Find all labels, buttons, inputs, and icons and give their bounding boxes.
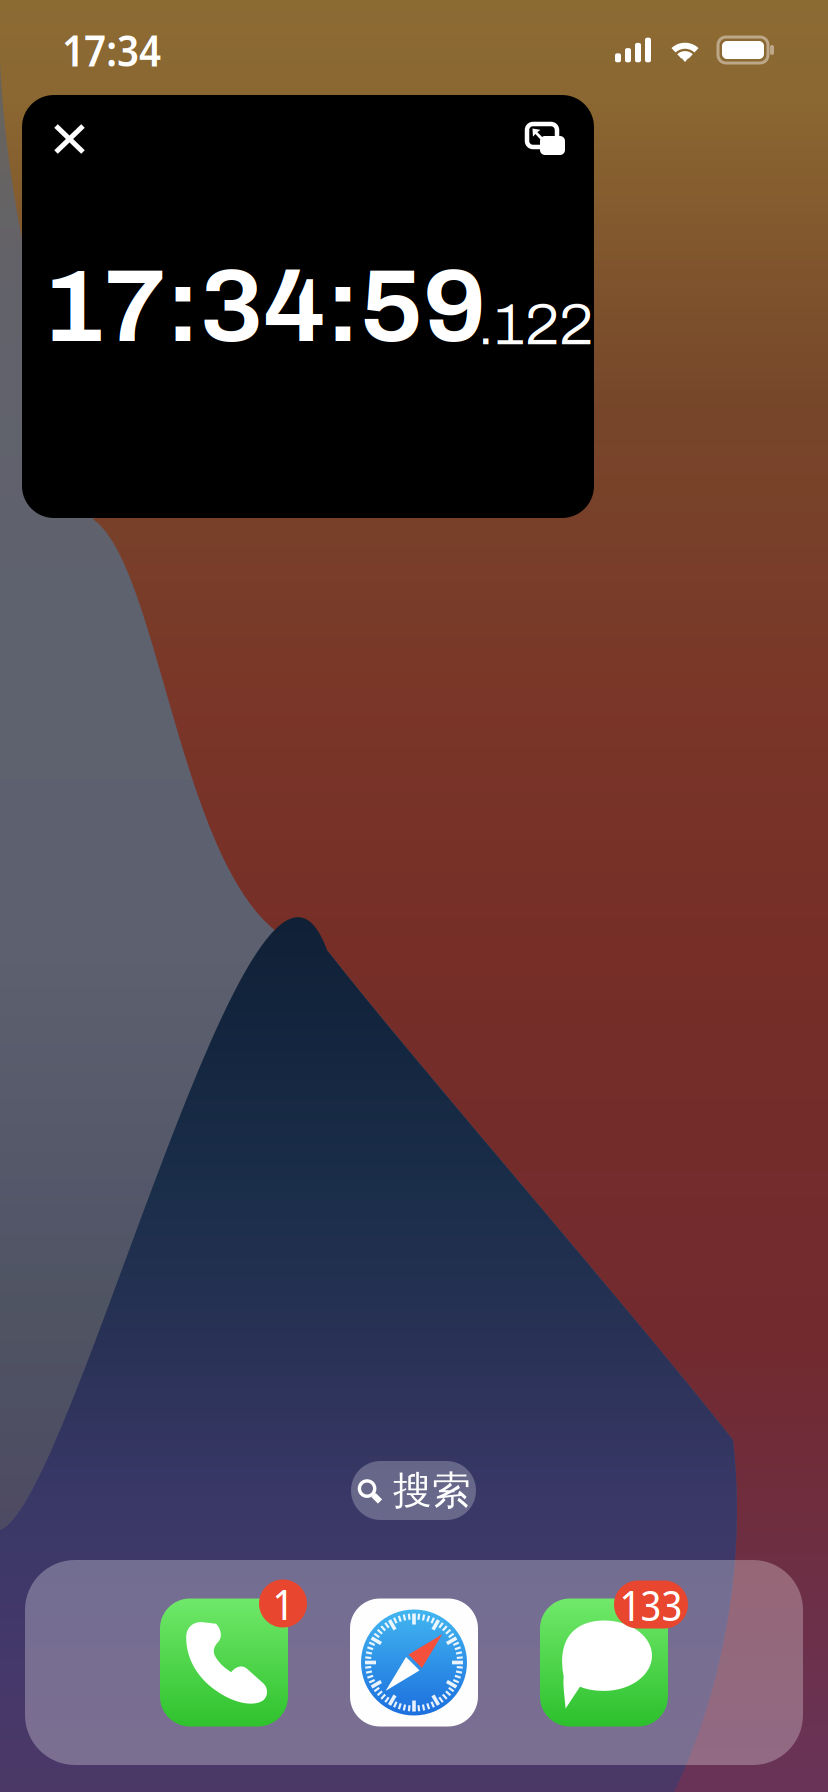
staticText: 17:34:59 (43, 252, 486, 362)
button[interactable]: Phone (160, 1598, 288, 1726)
button[interactable]: Close (38, 108, 101, 170)
button[interactable]: Safari (350, 1598, 478, 1726)
button[interactable]: Picture in Picture (513, 110, 579, 169)
staticText: 搜索 (393, 1466, 471, 1515)
staticText: 133 (619, 1575, 682, 1633)
staticText: .122 (478, 294, 593, 356)
button[interactable]: Messages (540, 1598, 668, 1726)
staticText: 17:34 (62, 21, 161, 79)
button[interactable]: 搜索 (351, 1461, 476, 1520)
staticText: 1 (272, 1574, 293, 1632)
